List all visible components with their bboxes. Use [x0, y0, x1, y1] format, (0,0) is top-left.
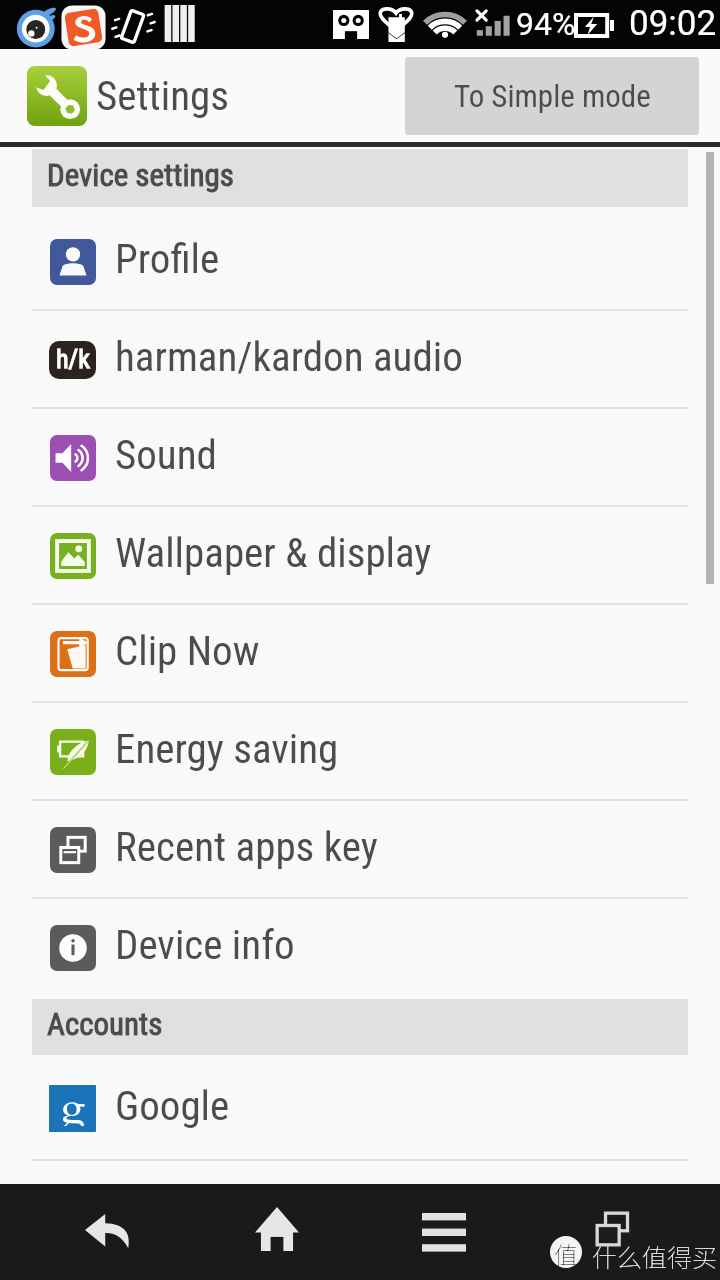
- staticText: Energy saving: [115, 725, 339, 773]
- staticText: Recent apps key: [115, 823, 378, 871]
- staticText: 94%: [516, 5, 576, 43]
- button[interactable]: Menu: [354, 1184, 534, 1280]
- staticText: h/k: [56, 344, 90, 374]
- button[interactable]: Recent apps key: [0, 801, 720, 897]
- button[interactable]: Profile: [0, 213, 720, 309]
- staticText: Device settings: [47, 157, 234, 193]
- button[interactable]: Device info: [0, 899, 720, 995]
- button[interactable]: Sound: [0, 409, 720, 505]
- button[interactable]: h/k: [0, 311, 720, 407]
- button[interactable]: Clip Now: [0, 605, 720, 701]
- button[interactable]: To Simple mode: [405, 57, 699, 135]
- button[interactable]: g: [0, 1057, 720, 1159]
- staticText: Profile: [115, 235, 220, 283]
- staticText: Device info: [115, 921, 295, 969]
- staticText: 值: [554, 1236, 578, 1268]
- staticText: Accounts: [47, 1006, 163, 1042]
- staticText: Google: [115, 1082, 230, 1130]
- staticText: harman/kardon audio: [115, 333, 463, 381]
- staticText: 什么值得买: [592, 1238, 718, 1274]
- button[interactable]: Back: [18, 1184, 198, 1280]
- button[interactable]: Wallpaper & display: [0, 507, 720, 603]
- staticText: 09:02: [629, 3, 717, 44]
- button[interactable]: Home: [187, 1184, 367, 1280]
- staticText: To Simple mode: [454, 78, 651, 114]
- staticText: Wallpaper & display: [115, 529, 432, 577]
- button[interactable]: Energy saving: [0, 703, 720, 799]
- staticText: Sound: [115, 431, 217, 479]
- button[interactable]: Recent apps: [523, 1184, 703, 1280]
- staticText: Clip Now: [115, 627, 260, 675]
- staticText: Settings: [96, 72, 229, 120]
- staticText: g: [61, 1085, 85, 1126]
